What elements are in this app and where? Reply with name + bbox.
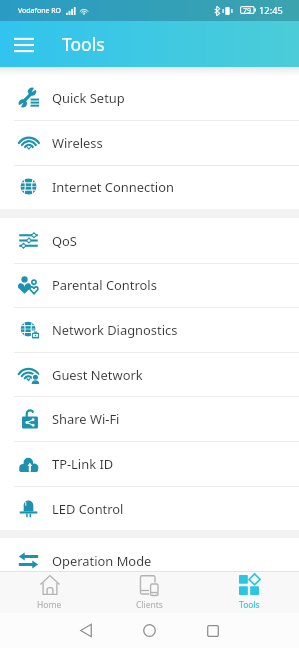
button[interactable]: Wireless <box>0 120 299 165</box>
staticText: Vodafone RO <box>18 6 62 16</box>
button[interactable]: TP-Link ID <box>0 441 299 486</box>
button[interactable]: QoS <box>0 218 299 263</box>
staticText: Internet Connection <box>52 178 174 196</box>
button[interactable]: Back <box>70 613 101 648</box>
staticText: QoS <box>52 232 77 250</box>
button[interactable]: LED Control <box>0 486 299 531</box>
staticText: Tools <box>62 32 105 56</box>
button[interactable]: Internet Connection <box>0 164 299 209</box>
button[interactable]: Guest Network <box>0 352 299 397</box>
staticText: Wireless <box>52 134 103 152</box>
staticText: Parental Controls <box>52 276 157 294</box>
button[interactable]: Operation Mode <box>0 538 299 583</box>
button[interactable]: Share Wi-Fi <box>0 396 299 441</box>
button[interactable]: Network Diagnostics <box>0 307 299 352</box>
button[interactable]: Home <box>0 572 99 613</box>
button[interactable]: Quick Setup <box>0 75 299 120</box>
staticText: Quick Setup <box>52 89 125 107</box>
staticText: TP-Link ID <box>52 455 114 473</box>
button[interactable]: Home <box>134 613 165 648</box>
staticText: 12:45 <box>259 4 283 17</box>
staticText: Home <box>37 599 62 611</box>
staticText: Clients <box>136 599 163 611</box>
staticText: Tools <box>239 599 260 611</box>
staticText: Share Wi-Fi <box>52 410 120 428</box>
staticText: Network Diagnostics <box>52 321 178 339</box>
staticText: LED Control <box>52 500 124 518</box>
button[interactable]: Clients <box>99 572 199 613</box>
button[interactable]: Tools <box>199 572 299 613</box>
button[interactable]: Recent apps <box>197 613 228 648</box>
staticText: Guest Network <box>52 366 143 384</box>
staticText: Operation Mode <box>52 552 152 570</box>
button[interactable]: Open navigation menu <box>8 29 39 60</box>
staticText: 79 <box>243 6 252 16</box>
button[interactable]: Parental Controls <box>0 262 299 307</box>
